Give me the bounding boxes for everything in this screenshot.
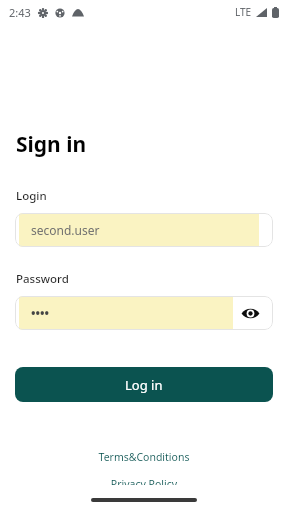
staticText: Log in (125, 376, 163, 394)
button[interactable]: Log in (15, 367, 273, 402)
staticText: second.user (31, 222, 100, 238)
staticText: LTE (235, 5, 252, 19)
staticText: Login (16, 188, 47, 204)
button[interactable]: Terms&Conditions (0, 450, 288, 464)
staticText: Privacy Policy (0, 477, 288, 485)
staticText: Sign in (16, 130, 87, 159)
staticText: Terms&Conditions (0, 450, 288, 464)
staticText: 2:43 (9, 5, 31, 20)
button[interactable]: •••• (15, 296, 273, 330)
staticText: Password (16, 271, 69, 287)
staticText: •••• (31, 305, 50, 321)
button[interactable]: Privacy Policy (0, 477, 288, 485)
button[interactable]: Show password (237, 300, 263, 326)
button[interactable]: second.user (15, 213, 273, 247)
